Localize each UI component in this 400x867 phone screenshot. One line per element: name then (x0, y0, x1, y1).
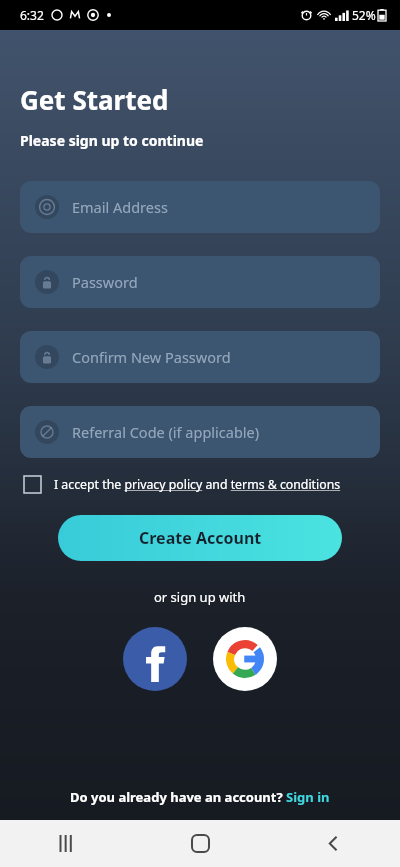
button[interactable]: Back (307, 820, 359, 867)
button[interactable]: Sign up with Facebook (123, 627, 187, 691)
staticText: Confirm New Password (72, 347, 231, 367)
staticText: Email Address (72, 197, 168, 217)
button[interactable]: Password (20, 256, 380, 308)
staticText: Do you already have an account? Sign in (70, 788, 330, 806)
button[interactable]: Home (174, 820, 226, 867)
button[interactable]: Confirm New Password (20, 331, 380, 383)
staticText: 6:32 (20, 7, 44, 23)
button[interactable]: Sign up with Google (213, 627, 277, 691)
staticText: or sign up with (154, 588, 246, 606)
staticText: Please sign up to continue (20, 131, 204, 150)
staticText: Create Account (139, 527, 262, 549)
button[interactable]: Create Account (58, 515, 342, 561)
staticText: Get Started (20, 82, 169, 117)
staticText: Password (72, 272, 138, 292)
staticText: 52% (352, 7, 376, 23)
button[interactable]: I accept the privacy policy and terms & … (0, 476, 400, 493)
button[interactable]: Referral Code (if applicable) (20, 406, 380, 458)
button[interactable]: Recent apps (41, 820, 93, 867)
button[interactable]: Do you already have an account? Sign in (0, 788, 400, 820)
staticText: Referral Code (if applicable) (72, 422, 260, 442)
button[interactable]: Email Address (20, 181, 380, 233)
staticText: I accept the privacy policy and terms & … (54, 476, 341, 493)
